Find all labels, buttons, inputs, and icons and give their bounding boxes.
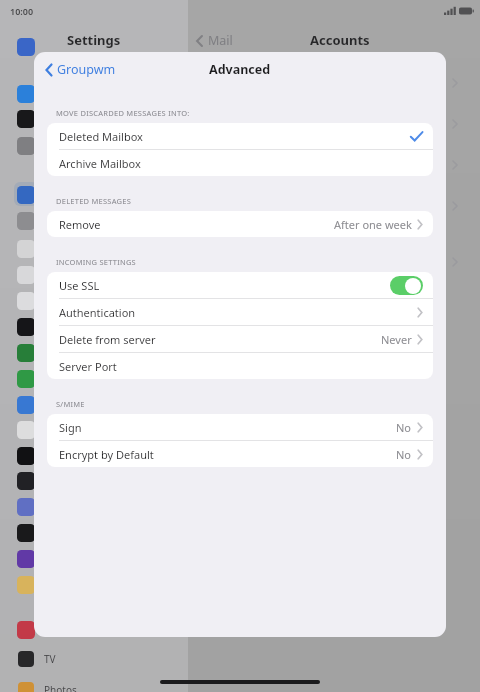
staticText: Settings [67, 31, 121, 49]
staticText: Accounts [310, 31, 370, 49]
staticText: After one week [334, 217, 412, 232]
button[interactable]: Encrypt by Default [47, 441, 433, 467]
staticText: INCOMING SETTINGS [56, 257, 136, 267]
button[interactable]: Deleted Mailbox [47, 123, 433, 149]
staticText: No [396, 420, 412, 435]
staticText: Advanced [209, 61, 271, 78]
button[interactable]: Delete from server [47, 326, 433, 352]
staticText: Never [381, 332, 412, 347]
staticText: No [396, 447, 412, 462]
button[interactable]: Server Port [47, 353, 433, 379]
button[interactable]: Archive Mailbox [47, 150, 433, 176]
staticText: DELETED MESSAGES [56, 196, 132, 206]
staticText: Authentication [59, 305, 136, 320]
button[interactable]: Sign [47, 414, 433, 440]
button[interactable]: Use SSL on [390, 276, 423, 295]
staticText: 10:00 [10, 5, 34, 17]
staticText: Sign [59, 420, 82, 435]
staticText: Server Port [59, 359, 117, 374]
staticText: Photos [44, 683, 77, 692]
staticText: Groupwm [57, 61, 116, 78]
button[interactable]: Groupwm [42, 57, 119, 82]
staticText: Use SSL [59, 278, 100, 293]
staticText: Archive Mailbox [59, 156, 141, 171]
button[interactable]: Use SSL [47, 272, 433, 298]
staticText: Encrypt by Default [59, 447, 154, 462]
staticText: Deleted Mailbox [59, 129, 143, 144]
button[interactable]: Remove [47, 211, 433, 237]
staticText: Remove [59, 217, 101, 232]
staticText: Mail [208, 32, 233, 49]
staticText: Delete from server [59, 332, 156, 347]
staticText: MOVE DISCARDED MESSAGES INTO: [56, 108, 190, 118]
staticText: TV [44, 652, 56, 666]
button[interactable]: Authentication [47, 299, 433, 325]
staticText: S/MIME [56, 399, 85, 409]
